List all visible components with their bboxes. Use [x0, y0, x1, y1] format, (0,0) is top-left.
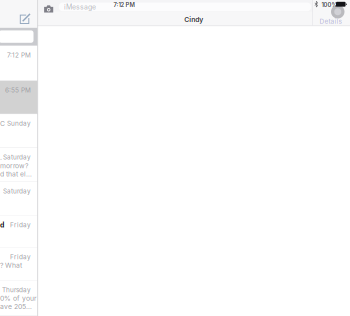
- staticText: iMessage: [64, 3, 96, 11]
- button[interactable]: C: [0, 114, 37, 148]
- button[interactable]: Friday: [0, 248, 37, 281]
- staticText: .: [0, 153, 2, 161]
- staticText: Saturday: [3, 187, 31, 195]
- button[interactable]: 7:12 PM: [0, 46, 37, 81]
- staticText: 6:55 PM: [5, 86, 31, 94]
- button[interactable]: Take Photo: [42, 3, 55, 14]
- button[interactable]: Saturday: [0, 182, 37, 216]
- staticText: Cindy: [184, 15, 203, 24]
- staticText: 0% of your: [0, 294, 37, 302]
- button[interactable]: Thursday: [0, 281, 37, 316]
- button[interactable]: d: [0, 216, 37, 248]
- staticText: C: [0, 119, 5, 128]
- staticText: Friday: [10, 253, 31, 261]
- staticText: ? What: [0, 261, 22, 269]
- staticText: 7:12 PM: [113, 1, 134, 8]
- button[interactable]: iMessage: [59, 3, 311, 11]
- staticText: d that el…: [0, 170, 32, 178]
- staticText: morrow?: [0, 162, 28, 170]
- button[interactable]: 6:55 PM: [0, 81, 37, 114]
- staticText: 7:12 PM: [7, 51, 31, 59]
- staticText: ave 205…: [0, 302, 32, 311]
- staticText: Sunday: [7, 120, 31, 127]
- staticText: Details: [319, 17, 341, 25]
- staticText: Saturday: [3, 153, 31, 161]
- staticText: Thursday: [2, 286, 31, 294]
- button[interactable]: New Message: [20, 1, 37, 27]
- staticText: Friday: [10, 221, 31, 229]
- button[interactable]: .: [0, 148, 37, 182]
- staticText: d: [0, 221, 4, 229]
- button[interactable]: Details: [317, 16, 343, 27]
- staticText: 100%: [321, 1, 337, 8]
